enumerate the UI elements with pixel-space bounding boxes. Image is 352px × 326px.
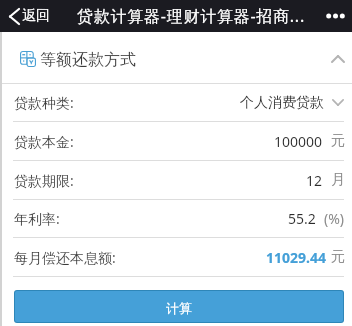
- staticText: 月: [331, 171, 345, 189]
- staticText: 元: [331, 248, 345, 266]
- button[interactable]: 返回: [0, 0, 56, 32]
- button[interactable]: 等额还款方式: [2, 32, 352, 83]
- button[interactable]: 每月偿还本息额:: [2, 238, 352, 276]
- staticText: 个人消费贷款: [240, 94, 324, 112]
- button[interactable]: More options: [319, 0, 352, 32]
- button[interactable]: 计算: [15, 291, 343, 322]
- staticText: 贷款本金:: [14, 132, 74, 151]
- staticText: 55.2: [288, 209, 316, 228]
- staticText: 年利率:: [14, 209, 60, 228]
- staticText: 每月偿还本息额:: [14, 248, 116, 267]
- button[interactable]: 年利率:: [2, 200, 352, 237]
- staticText: 12: [306, 171, 323, 190]
- staticText: 11029.44: [266, 248, 326, 267]
- staticText: 返回: [22, 7, 50, 25]
- staticText: 计算: [166, 300, 192, 316]
- button[interactable]: 贷款期限:: [2, 161, 352, 199]
- staticText: 元: [331, 132, 345, 150]
- staticText: 等额还款方式: [40, 50, 136, 70]
- staticText: 贷款期限:: [14, 171, 74, 190]
- button[interactable]: 贷款种类:: [2, 84, 352, 121]
- button[interactable]: 贷款本金:: [2, 122, 352, 160]
- staticText: 100000: [274, 132, 323, 151]
- staticText: (%): [324, 209, 345, 228]
- staticText: 贷款计算器-理财计算器-招商...: [77, 5, 305, 27]
- staticText: 贷款种类:: [14, 93, 74, 112]
